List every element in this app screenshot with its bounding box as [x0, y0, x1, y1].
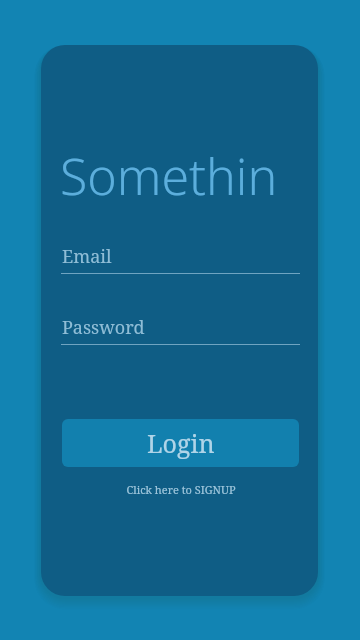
staticText: Click here to SIGNUP: [126, 482, 236, 497]
staticText: Login: [147, 426, 215, 460]
button[interactable]: Click here to SIGNUP: [62, 479, 299, 499]
staticText: Something: [60, 142, 306, 206]
button[interactable]: Email: [61, 244, 300, 274]
button[interactable]: Login: [62, 419, 299, 467]
staticText: Password: [62, 315, 145, 340]
button[interactable]: Password: [61, 315, 300, 345]
staticText: Email: [62, 244, 112, 269]
